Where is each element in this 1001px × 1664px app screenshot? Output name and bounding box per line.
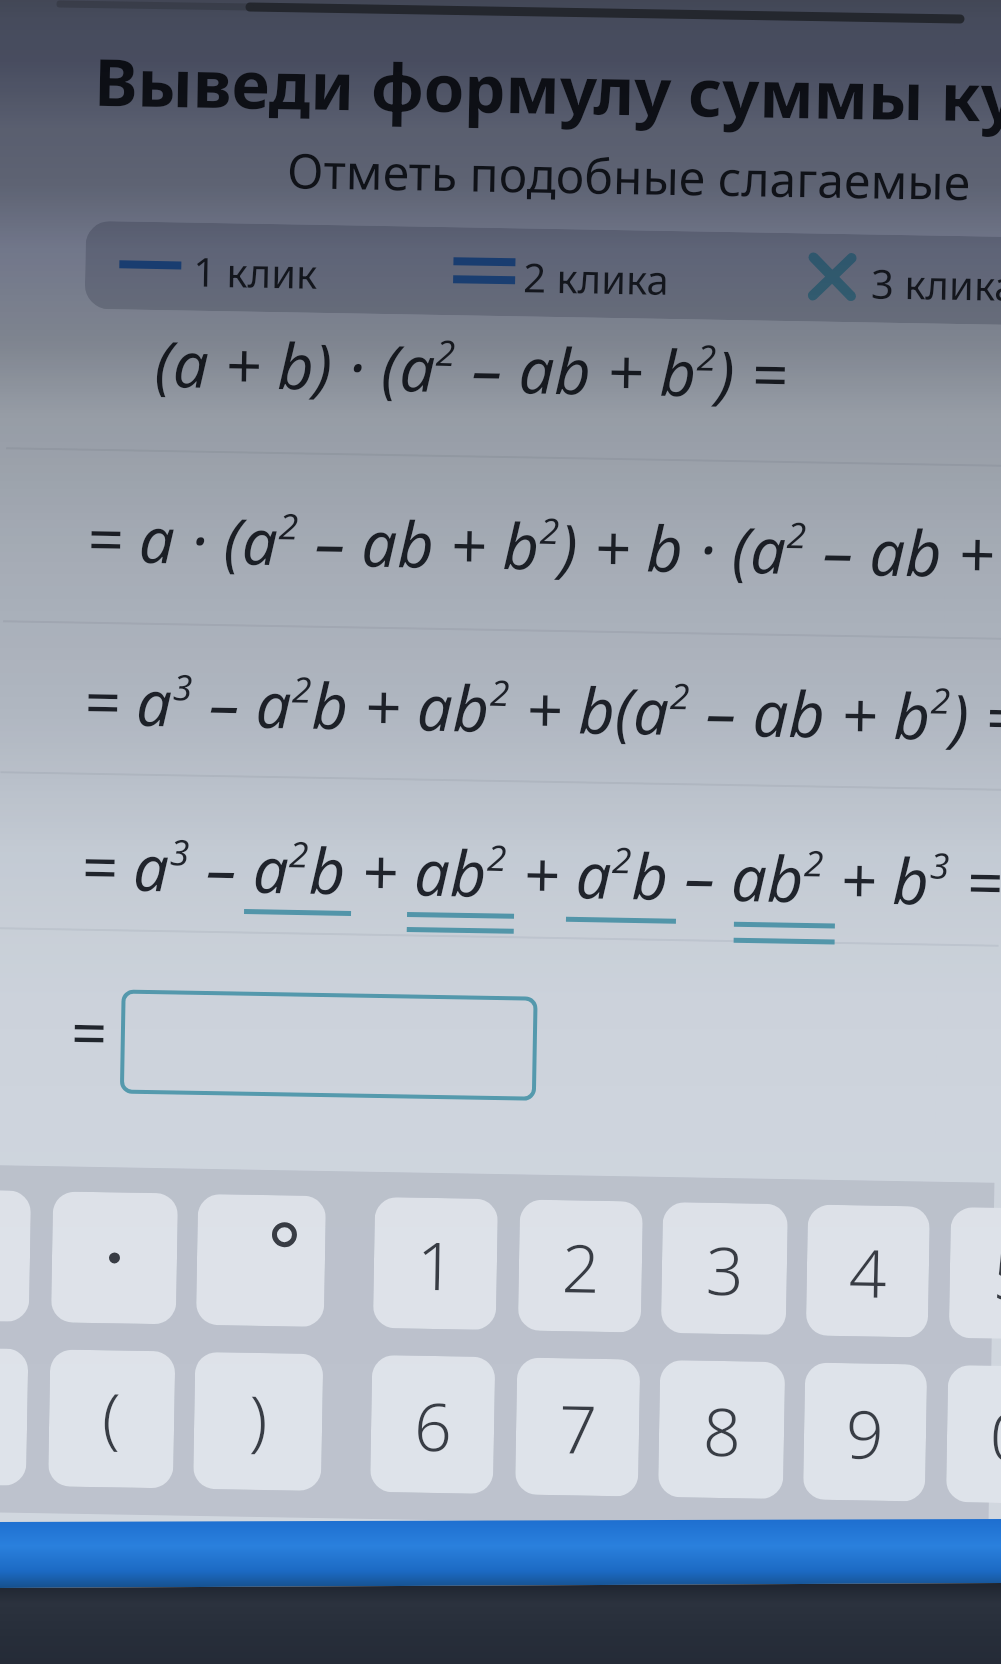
staticText: ) + b · (a xyxy=(559,503,787,593)
staticText: = xyxy=(69,989,108,1075)
staticText: b – ab xyxy=(631,832,804,921)
staticText: + b xyxy=(823,836,930,923)
staticText: – a xyxy=(189,825,290,912)
staticText: = xyxy=(949,838,1001,925)
staticText: – ab + b xyxy=(455,325,697,415)
staticText: – ab + b xyxy=(298,498,540,589)
button[interactable]: = a xyxy=(83,658,1001,760)
button[interactable]: 9 xyxy=(803,1362,927,1502)
staticText: = a xyxy=(80,823,171,910)
staticText: ( xyxy=(101,1370,122,1460)
staticText: 6 xyxy=(413,1380,453,1470)
staticText: 2 xyxy=(291,664,312,713)
button[interactable]: 4 xyxy=(806,1204,930,1338)
staticText: = a · (a xyxy=(86,495,279,584)
staticText: b + ab xyxy=(308,827,487,916)
staticText: = a xyxy=(83,658,173,745)
staticText: 2 xyxy=(561,1221,601,1312)
staticText: 5 xyxy=(992,1229,1001,1319)
staticText: Отметь подобные слагаемые xyxy=(286,137,971,214)
staticText: 3 xyxy=(173,662,193,711)
staticText: 3 клика xyxy=(871,255,1001,312)
button[interactable]: 3 xyxy=(661,1202,788,1335)
staticText: (a + b) · (a xyxy=(154,320,436,411)
staticText: 2 xyxy=(930,675,951,724)
staticText: 9 xyxy=(845,1387,885,1478)
button[interactable]: 5 xyxy=(949,1207,1001,1340)
staticText: 7 xyxy=(558,1382,598,1473)
staticText: – a xyxy=(192,660,292,747)
staticText: ) = xyxy=(950,673,1001,760)
staticText: 2 xyxy=(539,506,560,554)
button[interactable]: 1 xyxy=(373,1197,498,1330)
staticText: b + ab xyxy=(311,662,490,751)
button[interactable]: = a · (a xyxy=(86,495,995,597)
staticText: 2 xyxy=(435,328,456,376)
button[interactable]: Degree xyxy=(196,1194,326,1327)
button[interactable] xyxy=(122,991,536,1099)
button[interactable]: 8 xyxy=(658,1360,785,1499)
staticText: 2 xyxy=(669,671,690,719)
button[interactable]: 0 xyxy=(946,1365,1001,1504)
staticText: 8 xyxy=(702,1385,742,1475)
button[interactable]: 1 клик xyxy=(111,221,342,311)
button[interactable]: Three clicks xyxy=(794,233,1001,324)
button[interactable]: ) xyxy=(193,1352,323,1491)
staticText: 2 xyxy=(489,668,510,716)
staticText: 3 xyxy=(930,841,950,889)
staticText: 1 клик xyxy=(193,244,319,300)
staticText: + a xyxy=(506,830,612,918)
staticText: 2 клика xyxy=(523,249,670,306)
staticText: 2 xyxy=(289,829,309,878)
staticText: ) xyxy=(248,1373,269,1463)
button[interactable]: = a xyxy=(80,823,1001,925)
staticText: 2 xyxy=(278,501,299,549)
button[interactable]: Comma xyxy=(0,1189,31,1322)
button[interactable]: Multiply xyxy=(51,1191,178,1324)
button[interactable]: ( xyxy=(0,1347,28,1486)
staticText: 3 xyxy=(170,827,190,876)
staticText: + b(a xyxy=(509,665,670,754)
staticText: Выведи формулу суммы куб xyxy=(94,37,1001,143)
staticText: 2 xyxy=(487,833,507,881)
staticText: 2 xyxy=(696,332,717,381)
staticText: 0 xyxy=(989,1390,1001,1480)
staticText: – ab + b xyxy=(689,668,931,758)
staticText: 2 xyxy=(612,835,632,883)
other: Three clicks xyxy=(809,253,856,300)
button[interactable]: 2 xyxy=(518,1199,643,1332)
button[interactable]: (a + b) · (a xyxy=(154,320,788,417)
button[interactable]: 6 xyxy=(370,1355,495,1494)
staticText: ) = xyxy=(716,330,788,417)
staticText: 2 xyxy=(804,838,824,887)
staticText: 3 xyxy=(705,1224,745,1314)
button[interactable]: 7 xyxy=(515,1357,640,1496)
staticText: 4 xyxy=(848,1226,888,1317)
staticText: – ab + xyxy=(806,507,995,597)
staticText: 2 xyxy=(786,510,807,558)
button[interactable]: 2 клика xyxy=(444,227,676,317)
staticText: 1 xyxy=(416,1219,456,1309)
button[interactable]: ( xyxy=(48,1349,175,1488)
